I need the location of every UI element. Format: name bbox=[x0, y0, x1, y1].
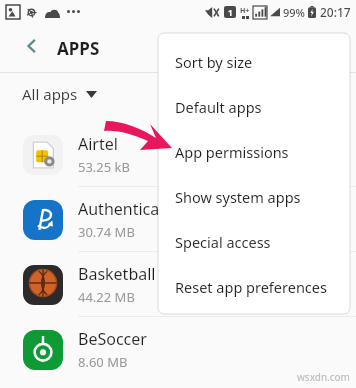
staticText: Airtel bbox=[78, 133, 118, 155]
staticText: 1 bbox=[228, 7, 233, 18]
staticText: APPS bbox=[57, 37, 100, 60]
button[interactable]: Show system apps bbox=[158, 174, 350, 219]
staticText: H+ bbox=[240, 6, 250, 16]
staticText: Special access bbox=[175, 232, 271, 252]
staticText: 53.25 kB bbox=[78, 158, 131, 176]
staticText: wsxdn.com bbox=[297, 370, 350, 384]
staticText: Show system apps bbox=[175, 187, 301, 207]
staticText: Sort by size bbox=[175, 52, 253, 72]
button[interactable]: All apps bbox=[22, 80, 97, 108]
button[interactable]: App permissions bbox=[158, 129, 350, 174]
button[interactable]: BeSoccer bbox=[0, 317, 356, 382]
staticText: All apps bbox=[22, 84, 78, 104]
button[interactable]: Reset app preferences bbox=[158, 264, 350, 309]
staticText: Default apps bbox=[175, 97, 262, 117]
staticText: 99% bbox=[283, 5, 305, 20]
staticText: Basketball bbox=[78, 263, 156, 285]
staticText: Reset app preferences bbox=[175, 277, 327, 297]
staticText: 8.60 MB bbox=[78, 353, 128, 371]
staticText: App permissions bbox=[175, 142, 289, 162]
staticText: Authenticator bbox=[78, 198, 182, 220]
button[interactable]: Default apps bbox=[158, 84, 350, 129]
staticText: BeSoccer bbox=[78, 328, 147, 350]
button[interactable]: Basketball bbox=[0, 252, 356, 317]
staticText: 44.22 MB bbox=[78, 288, 135, 306]
staticText: 20:17 bbox=[320, 4, 351, 20]
button[interactable]: Airtel bbox=[0, 122, 356, 187]
button[interactable]: Back bbox=[10, 24, 54, 68]
button[interactable]: Authenticator bbox=[0, 187, 356, 252]
staticText: 30.74 MB bbox=[78, 223, 135, 241]
button[interactable]: Sort by size bbox=[158, 39, 350, 84]
button[interactable]: Special access bbox=[158, 219, 350, 264]
